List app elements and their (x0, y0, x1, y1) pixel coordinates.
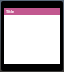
staticText: Title (6, 9, 14, 14)
button[interactable]: Title (4, 8, 60, 15)
